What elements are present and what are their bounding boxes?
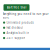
staticText: 24/7 support bbox=[6, 36, 25, 40]
staticText: Analytics built in bbox=[6, 31, 29, 35]
staticText: Fast checkout bbox=[6, 26, 23, 29]
staticText: Everything you need to run your store bbox=[2, 12, 48, 19]
staticText: Unlimited products bbox=[6, 21, 33, 24]
button[interactable]: Start free trial bbox=[3, 4, 29, 11]
staticText: Start free trial bbox=[6, 6, 26, 9]
